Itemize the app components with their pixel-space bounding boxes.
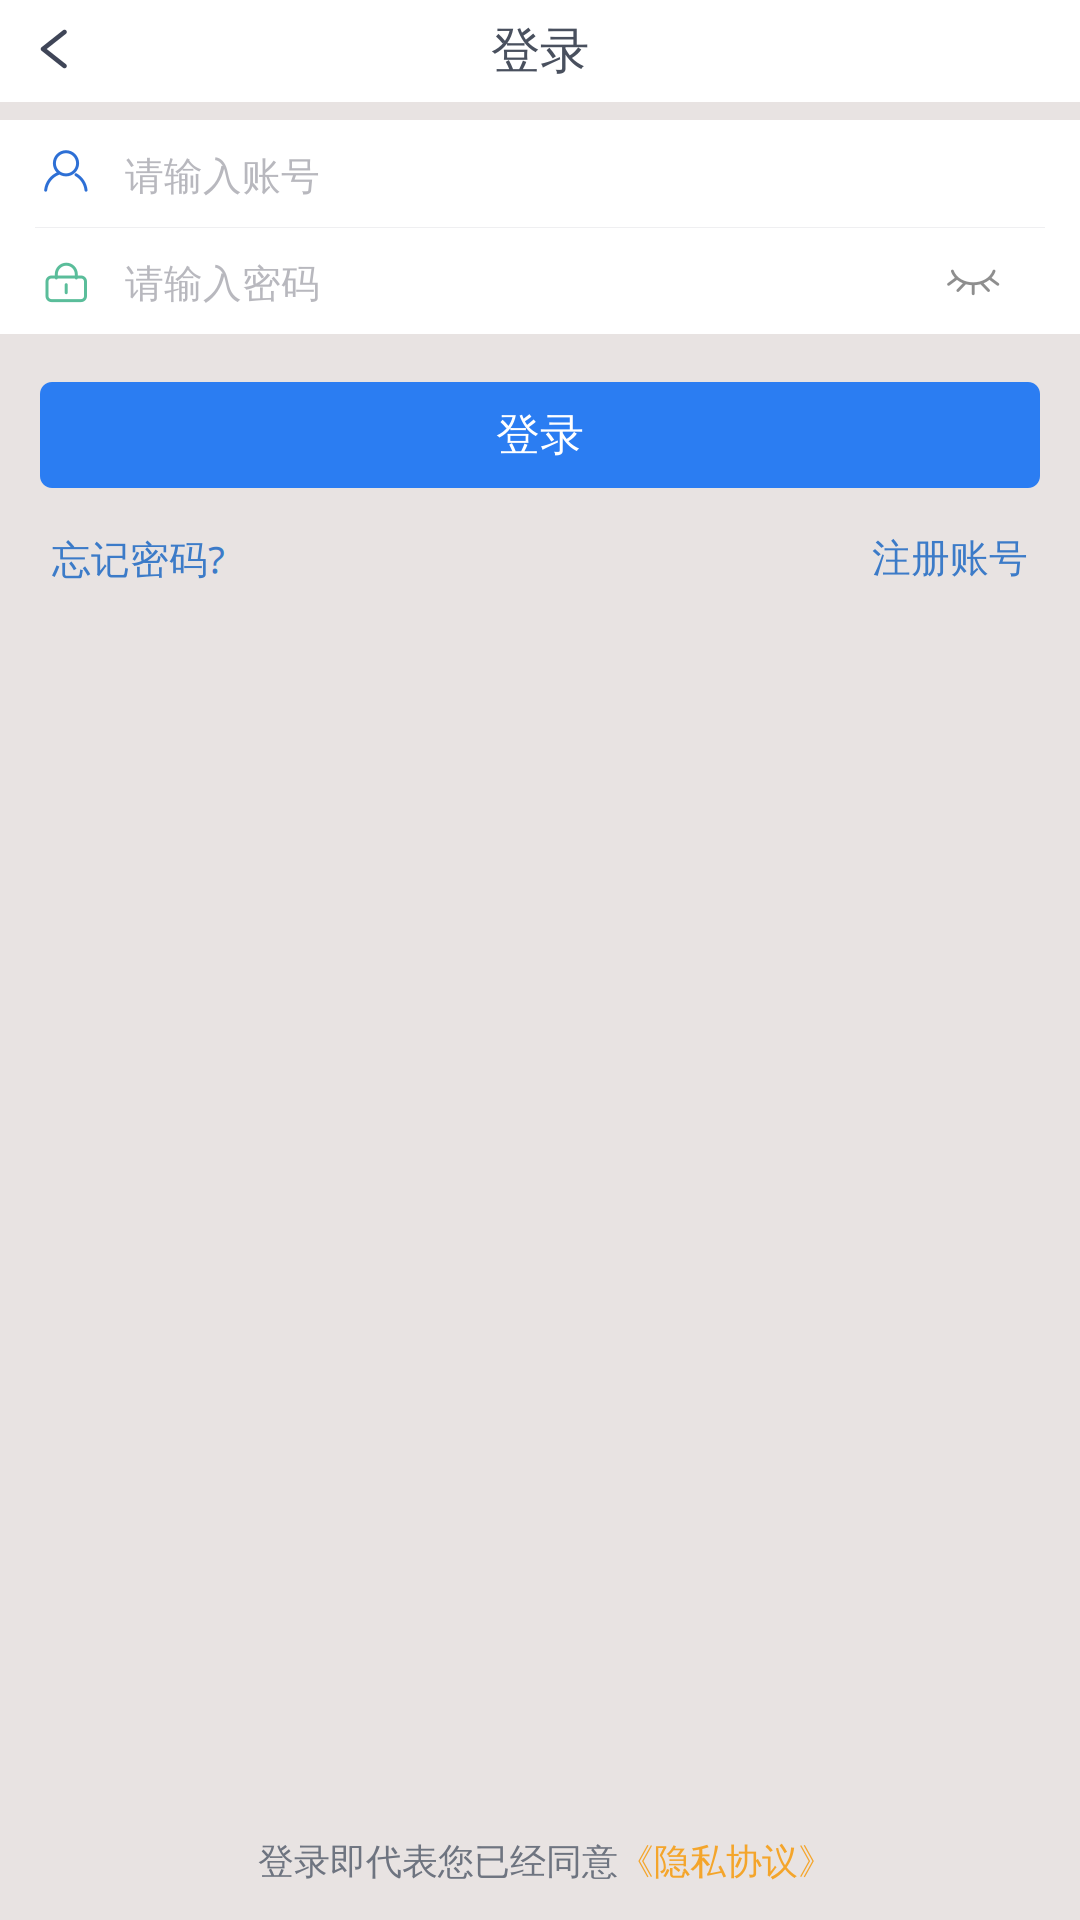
staticText: 登录 (491, 21, 589, 81)
button[interactable]: Show password (944, 228, 1080, 334)
staticText: 《隐私协议》 (618, 1840, 834, 1884)
staticText: 登录 (496, 408, 584, 462)
staticText: 请输入密码 (125, 260, 320, 308)
staticText: 登录即代表您已经同意 (258, 1840, 618, 1884)
button[interactable]: Back (0, 0, 96, 102)
staticText: 请输入账号 (125, 153, 320, 200)
staticText: 忘记密码? (52, 533, 225, 584)
button[interactable]: 登录 (40, 382, 1040, 488)
button[interactable]: 忘记密码? (52, 533, 225, 584)
button[interactable]: 注册账号 (872, 535, 1028, 582)
button[interactable]: 《隐私协议》 (618, 1840, 834, 1884)
staticText: 注册账号 (872, 535, 1028, 582)
